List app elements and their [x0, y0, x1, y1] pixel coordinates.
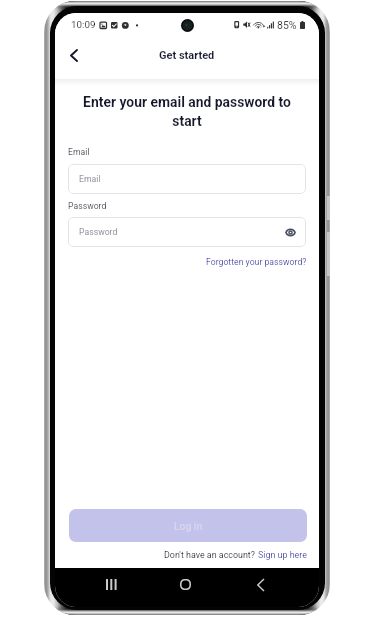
- button[interactable]: Back: [60, 41, 88, 69]
- button[interactable]: Email: [68, 164, 306, 194]
- staticText: 10:09: [71, 19, 96, 30]
- staticText: 85%: [277, 19, 297, 31]
- button[interactable]: Back: [244, 568, 277, 601]
- staticText: Sign up here: [258, 550, 307, 560]
- staticText: Password: [79, 227, 118, 237]
- staticText: Email: [79, 174, 101, 184]
- staticText: Enter your email and password to start: [71, 94, 303, 129]
- button[interactable]: Home: [169, 568, 202, 601]
- button[interactable]: Log in: [69, 509, 307, 542]
- staticText: Email: [68, 147, 90, 157]
- button[interactable]: Show password: [282, 224, 298, 240]
- staticText: Log in: [174, 520, 203, 532]
- staticText: Password: [68, 201, 107, 211]
- button[interactable]: Password: [68, 217, 306, 247]
- button[interactable]: Sign up here: [258, 550, 307, 560]
- staticText: Get started: [159, 49, 215, 62]
- staticText: Forgotten your password?: [206, 257, 307, 267]
- button[interactable]: Recents: [95, 568, 128, 601]
- button[interactable]: Forgotten your password?: [206, 257, 307, 267]
- staticText: Don't have an account?: [164, 550, 258, 560]
